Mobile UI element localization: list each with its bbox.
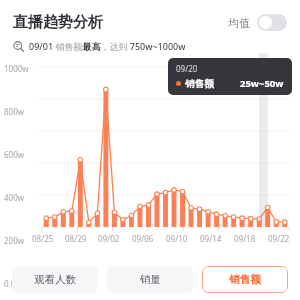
staticText: 均值 <box>228 16 250 30</box>
button[interactable]: 均值 <box>226 12 289 33</box>
other: Average toggle, off <box>257 14 287 31</box>
staticText: 09/02 <box>98 233 120 244</box>
staticText: 08/25 <box>32 233 54 244</box>
staticText: 09/10 <box>166 233 188 244</box>
staticText: 600w <box>4 149 25 160</box>
staticText: 400w <box>4 192 25 203</box>
staticText: 直播趋势分析 <box>13 13 103 32</box>
staticText: 09/14 <box>200 233 222 244</box>
button[interactable]: 销售额 <box>202 266 288 293</box>
staticText: 800w <box>4 106 25 117</box>
staticText: 销售额 <box>229 273 261 286</box>
button[interactable]: 销量 <box>107 266 193 293</box>
staticText: 09/18 <box>234 233 256 244</box>
staticText: 08/29 <box>65 233 87 244</box>
staticText: 09/01 销售额最高，达到 750w~1000w <box>29 40 186 52</box>
staticText: 25w~50w <box>240 77 284 90</box>
button[interactable]: 观看人数 <box>12 266 98 293</box>
staticText: 销量 <box>140 273 161 286</box>
staticText: 09/22 <box>268 233 290 244</box>
staticText: 1000w <box>4 63 29 74</box>
staticText: 09/06 <box>132 233 154 244</box>
staticText: 观看人数 <box>34 273 76 286</box>
staticText: 0.00 <box>4 278 20 289</box>
staticText: 销售额 <box>185 78 214 90</box>
staticText: 200w <box>4 235 25 246</box>
staticText: 09/20 <box>176 63 198 74</box>
